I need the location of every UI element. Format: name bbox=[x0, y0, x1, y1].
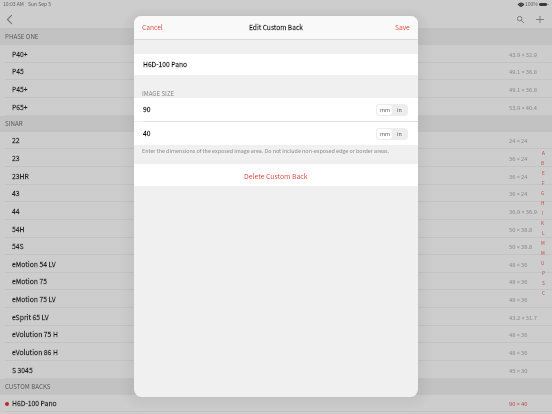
staticText: 50 × 38.8 bbox=[509, 242, 533, 251]
staticText: P40+ bbox=[12, 49, 28, 60]
button[interactable]: eSprit 65 LV bbox=[0, 308, 552, 326]
staticText: 48 × 36 bbox=[509, 277, 528, 286]
staticText: 53.9 × 40.4 bbox=[509, 103, 537, 112]
staticText: PHASE ONE bbox=[5, 32, 39, 42]
button[interactable]: H6D-100 Pano bbox=[134, 54, 418, 75]
staticText: 44 bbox=[12, 206, 20, 217]
staticText: 45 × 30 bbox=[509, 366, 528, 375]
staticText: 48 × 36 bbox=[509, 260, 528, 269]
button[interactable]: Search bbox=[512, 11, 528, 27]
staticText: P45+ bbox=[12, 84, 28, 95]
button[interactable]: 22 bbox=[0, 132, 552, 149]
staticText: G bbox=[541, 190, 545, 197]
staticText: C bbox=[542, 290, 545, 297]
staticText: Save bbox=[395, 22, 410, 33]
staticText: eMotion 75 bbox=[12, 276, 48, 287]
staticText: 48 × 36 bbox=[509, 348, 528, 357]
staticText: Cancel bbox=[142, 22, 163, 33]
button[interactable]: eVolution 75 H bbox=[0, 326, 552, 343]
staticText: Delete Custom Back bbox=[244, 171, 308, 182]
staticText: eVolution 86 H bbox=[12, 347, 58, 358]
staticText: 36.9 × 36.9 bbox=[509, 207, 537, 216]
staticText: 90 bbox=[143, 104, 151, 115]
staticText: mm bbox=[380, 106, 390, 115]
staticText: F bbox=[542, 180, 545, 187]
staticText: P65+ bbox=[12, 102, 28, 113]
staticText: E bbox=[542, 170, 545, 177]
staticText: eSprit 65 LV bbox=[12, 312, 49, 323]
staticText: 43.9 × 32.9 bbox=[509, 50, 537, 59]
staticText: I bbox=[542, 210, 544, 217]
button[interactable]: Save bbox=[395, 22, 410, 33]
button[interactable]: Cancel bbox=[142, 22, 163, 33]
staticText: 100% bbox=[525, 0, 538, 8]
staticText: 24 × 24 bbox=[509, 136, 528, 145]
button[interactable]: 44 bbox=[0, 202, 552, 220]
staticText: H6D-100 Pano bbox=[143, 59, 188, 70]
staticText: 50 × 38.8 bbox=[509, 225, 533, 234]
button[interactable]: H6D-100 Pano bbox=[0, 395, 552, 412]
staticText: 23 bbox=[12, 153, 20, 164]
staticText: 40 bbox=[143, 128, 151, 139]
button[interactable]: 23 bbox=[0, 149, 552, 167]
staticText: 54H bbox=[12, 224, 25, 235]
staticText: L bbox=[542, 230, 545, 237]
staticText: SINAR bbox=[5, 119, 23, 129]
staticText: CUSTOM BACKS bbox=[5, 382, 51, 392]
staticText: A bbox=[542, 150, 545, 157]
button[interactable]: 43 bbox=[0, 185, 552, 202]
button[interactable]: Add bbox=[532, 11, 548, 27]
button[interactable]: eVolution 86 H bbox=[0, 343, 552, 361]
staticText: P45 bbox=[12, 66, 24, 77]
staticText: IMAGE SIZE bbox=[142, 89, 175, 99]
staticText: Enter the dimensions of the exposed imag… bbox=[142, 147, 390, 156]
button[interactable]: P45 bbox=[0, 63, 552, 80]
button[interactable]: P40+ bbox=[0, 45, 552, 63]
staticText: P bbox=[542, 270, 545, 277]
staticText: 10:03 AM bbox=[3, 0, 24, 8]
button[interactable]: 54H bbox=[0, 220, 552, 238]
staticText: 43 bbox=[12, 188, 20, 199]
button[interactable]: mm bbox=[377, 129, 392, 139]
staticText: S bbox=[542, 280, 545, 287]
staticText: Sun Sep 5 bbox=[28, 0, 51, 8]
staticText: U bbox=[541, 260, 545, 267]
staticText: eVolution 75 H bbox=[12, 329, 58, 340]
staticText: M bbox=[541, 250, 545, 257]
staticText: in bbox=[397, 106, 402, 115]
staticText: 49.1 × 36.8 bbox=[509, 67, 537, 76]
staticText: 48 × 36 bbox=[509, 330, 528, 339]
staticText: 22 bbox=[12, 135, 20, 146]
staticText: eMotion 75 LV bbox=[12, 294, 56, 305]
staticText: H6D-100 Pano bbox=[12, 398, 57, 409]
staticText: 49.1 × 36.8 bbox=[509, 85, 537, 94]
staticText: 23HR bbox=[12, 171, 29, 182]
staticText: eMotion 54 LV bbox=[12, 259, 56, 270]
staticText: in bbox=[397, 130, 402, 139]
button[interactable]: S 3045 bbox=[0, 361, 552, 379]
button[interactable]: P45+ bbox=[0, 80, 552, 98]
staticText: 36 × 24 bbox=[509, 172, 528, 181]
button[interactable]: eMotion 75 bbox=[0, 273, 552, 290]
staticText: 43.2 × 31.7 bbox=[509, 313, 537, 322]
button[interactable]: Delete Custom Back bbox=[134, 164, 418, 186]
button[interactable]: eMotion 75 LV bbox=[0, 290, 552, 308]
staticText: B bbox=[541, 160, 545, 167]
staticText: 36 × 24 bbox=[509, 189, 528, 198]
staticText: H bbox=[541, 200, 545, 207]
button[interactable]: P65+ bbox=[0, 98, 552, 116]
staticText: 48 × 36 bbox=[509, 295, 528, 304]
button[interactable]: Back bbox=[1, 11, 17, 27]
button[interactable]: eMotion 54 LV bbox=[0, 255, 552, 273]
staticText: M bbox=[541, 240, 545, 247]
button[interactable]: in bbox=[392, 129, 407, 139]
button[interactable]: mm bbox=[377, 105, 392, 115]
staticText: Edit Custom Back bbox=[249, 22, 303, 33]
button[interactable]: 23HR bbox=[0, 167, 552, 185]
button[interactable]: 54S bbox=[0, 238, 552, 255]
staticText: mm bbox=[380, 130, 390, 139]
staticText: S 3045 bbox=[12, 365, 33, 376]
staticText: 54S bbox=[12, 241, 24, 252]
staticText: K bbox=[541, 220, 545, 227]
button[interactable]: in bbox=[392, 105, 407, 115]
